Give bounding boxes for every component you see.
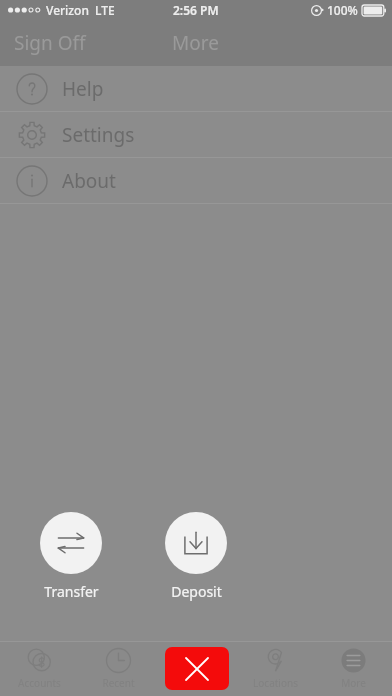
button[interactable]: Deposit [165,512,227,601]
button[interactable]: Help [0,66,392,111]
staticText: Sign Off [14,30,86,56]
button[interactable]: Transfer [40,512,102,601]
staticText: 100% [327,2,358,18]
staticText: LTE [95,2,115,18]
staticText: 2:56 PM [173,2,219,18]
staticText: Help [62,76,104,102]
button[interactable]: More [314,641,392,696]
staticText: About [62,168,116,194]
button[interactable]: Close [165,647,229,690]
staticText: Verizon [46,2,89,18]
staticText: Settings [62,122,135,148]
button[interactable]: More [162,22,229,64]
button[interactable]: Sign Off [0,22,100,64]
staticText: More [172,30,219,56]
staticText: Deposit [171,582,222,601]
staticText: Transfer [44,582,99,601]
button[interactable]: Settings [0,112,392,157]
button[interactable]: About [0,158,392,203]
